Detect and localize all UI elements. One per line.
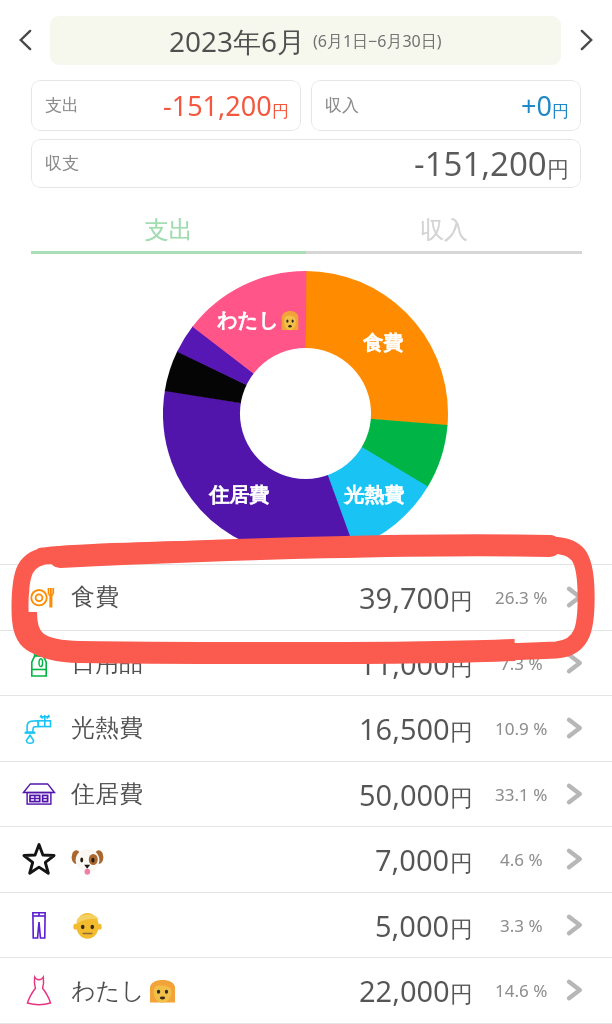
staticText: 収入: [420, 215, 468, 245]
staticText: 食費: [363, 331, 403, 356]
staticText: 支出: [45, 95, 79, 116]
staticText: 収入: [325, 95, 359, 116]
staticText: 7.3 %: [500, 652, 543, 675]
staticText: 4.6 %: [500, 848, 543, 871]
staticText: 22,000: [359, 971, 450, 1010]
staticText: 円: [450, 587, 473, 616]
staticText: +0: [521, 87, 552, 124]
staticText: 光熱費: [344, 483, 404, 508]
button[interactable]: 支出: [31, 80, 301, 131]
staticText: 円: [450, 849, 473, 878]
staticText: (6月1日−6月30日): [313, 30, 442, 52]
staticText: 住居費: [71, 779, 143, 809]
button[interactable]: 食費: [0, 565, 612, 629]
button[interactable]: 5,000: [0, 893, 612, 957]
staticText: 収支: [45, 153, 79, 174]
button[interactable]: 支出: [31, 210, 306, 250]
staticText: 食費: [71, 582, 119, 612]
button[interactable]: Next month: [564, 18, 608, 62]
staticText: 7,000: [375, 840, 450, 879]
button[interactable]: 7,000: [0, 827, 612, 891]
staticText: 円: [450, 784, 473, 813]
staticText: -151,200: [163, 87, 272, 124]
staticText: 33.1 %: [495, 783, 548, 806]
staticText: 39,700: [359, 578, 450, 617]
button[interactable]: わたし: [0, 958, 612, 1022]
staticText: わたし: [217, 308, 279, 333]
staticText: 日用品: [71, 648, 143, 678]
button[interactable]: 収支: [31, 139, 581, 188]
staticText: 11,000: [359, 644, 450, 683]
staticText: 5,000: [375, 906, 450, 945]
staticText: 2023年6月: [169, 22, 306, 60]
staticText: 円: [450, 718, 473, 747]
button[interactable]: 収入: [306, 210, 582, 250]
staticText: 16,500: [359, 709, 450, 748]
staticText: 3.3 %: [500, 914, 543, 937]
staticText: 支出: [145, 215, 193, 245]
button[interactable]: 日用品: [0, 631, 612, 695]
staticText: わたし: [71, 976, 145, 1006]
staticText: 円: [450, 915, 473, 944]
staticText: 14.6 %: [495, 979, 548, 1002]
button[interactable]: 2023年6月: [50, 16, 561, 65]
staticText: 円: [547, 156, 569, 184]
staticText: 10.9 %: [495, 717, 548, 740]
staticText: 円: [552, 101, 569, 122]
staticText: 円: [450, 980, 473, 1009]
staticText: 光熱費: [71, 713, 143, 743]
staticText: 26.3 %: [495, 586, 548, 609]
button[interactable]: Previous month: [4, 18, 48, 62]
button[interactable]: 光熱費: [0, 696, 612, 760]
button[interactable]: 住居費: [0, 762, 612, 826]
staticText: 円: [450, 653, 473, 682]
staticText: 円: [272, 101, 289, 122]
staticText: 50,000: [359, 775, 450, 814]
staticText: -151,200: [414, 141, 547, 186]
button[interactable]: 収入: [311, 80, 581, 131]
staticText: 住居費: [209, 483, 269, 508]
